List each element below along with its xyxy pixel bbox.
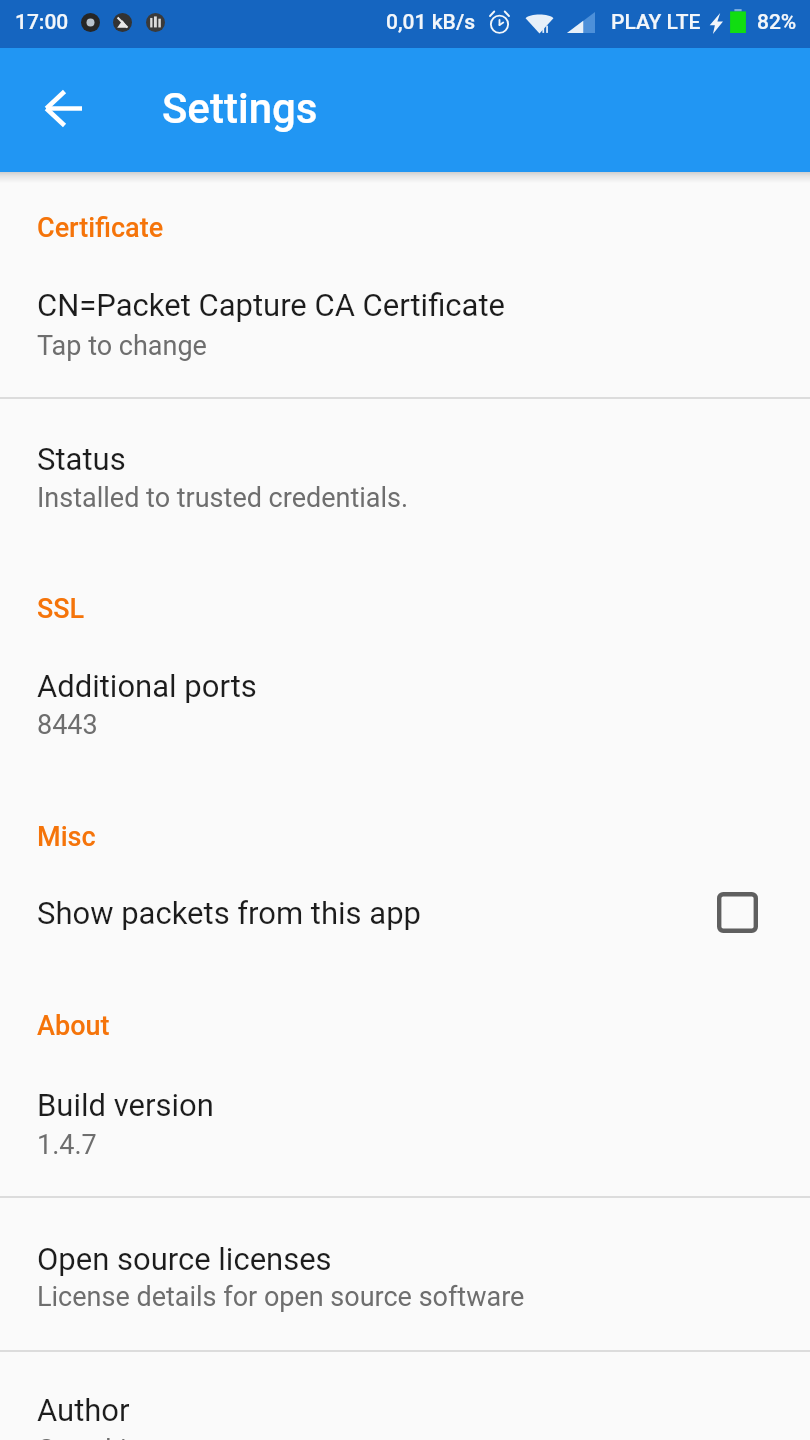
staticText: Status	[37, 441, 126, 477]
button[interactable]: Show packets from this app	[0, 870, 810, 956]
button[interactable]: CN=Packet Capture CA Certificate	[0, 262, 810, 397]
staticText: Installed to trusted credentials.	[37, 482, 409, 514]
staticText: 8443	[37, 709, 98, 741]
staticText: 17:00	[15, 10, 69, 35]
button[interactable]: Additional ports	[0, 643, 810, 776]
staticText: Show packets from this app	[37, 895, 421, 931]
staticText: Settings	[162, 84, 318, 133]
button[interactable]: Build version	[0, 1062, 810, 1196]
staticText: CN=Packet Capture CA Certificate	[37, 287, 505, 323]
staticText: 0,01 kB/s	[386, 10, 476, 35]
button[interactable]: Navigate up	[19, 64, 107, 152]
button[interactable]: Status	[0, 399, 810, 548]
staticText: Greyshirts	[37, 1434, 160, 1440]
staticText: Author	[37, 1392, 130, 1428]
staticText: Additional ports	[37, 668, 257, 704]
staticText: Build version	[37, 1087, 214, 1123]
staticText: SSL	[37, 593, 85, 625]
staticText: Certificate	[37, 212, 164, 244]
staticText: Open source licenses	[37, 1241, 332, 1277]
staticText: License details for open source software	[37, 1281, 525, 1313]
staticText: Tap to change	[37, 330, 207, 362]
button[interactable]: Show packets from this app checkbox, unc…	[717, 892, 758, 933]
staticText: About	[37, 1010, 110, 1042]
staticText: Misc	[37, 821, 96, 853]
staticText: PLAY LTE	[611, 10, 701, 35]
button[interactable]: Author	[0, 1352, 810, 1440]
button[interactable]: Open source licenses	[0, 1198, 810, 1350]
staticText: 1.4.7	[37, 1129, 97, 1161]
staticText: 82%	[757, 10, 797, 35]
